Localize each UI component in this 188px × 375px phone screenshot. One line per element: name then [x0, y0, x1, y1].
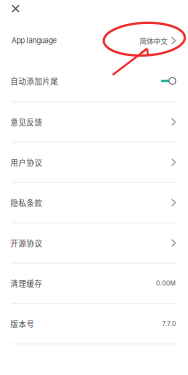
staticText: 0.00M: [156, 279, 176, 287]
staticText: 自动添加片尾: [10, 75, 58, 86]
button[interactable]: 版本号: [0, 304, 188, 343]
staticText: 清理缓存: [10, 278, 42, 289]
staticText: App language: [11, 36, 56, 45]
staticText: 7.7.0: [162, 320, 176, 327]
button[interactable]: App language: [0, 20, 188, 61]
staticText: 简体中文: [139, 35, 167, 46]
button[interactable]: 开源协议: [0, 223, 188, 263]
button[interactable]: 清理缓存: [0, 264, 188, 303]
staticText: 意见反馈: [10, 116, 42, 127]
button[interactable]: Close: [5, 0, 27, 17]
staticText: 开源协议: [10, 237, 42, 248]
button[interactable]: 自动添加片尾: [0, 61, 188, 101]
button[interactable]: 意见反馈: [0, 102, 188, 141]
staticText: 版本号: [10, 318, 34, 329]
button[interactable]: 隐私条款: [0, 183, 188, 222]
staticText: 隐私条款: [10, 197, 42, 208]
button[interactable]: 用户协议: [0, 143, 188, 182]
staticText: 用户协议: [10, 157, 42, 168]
